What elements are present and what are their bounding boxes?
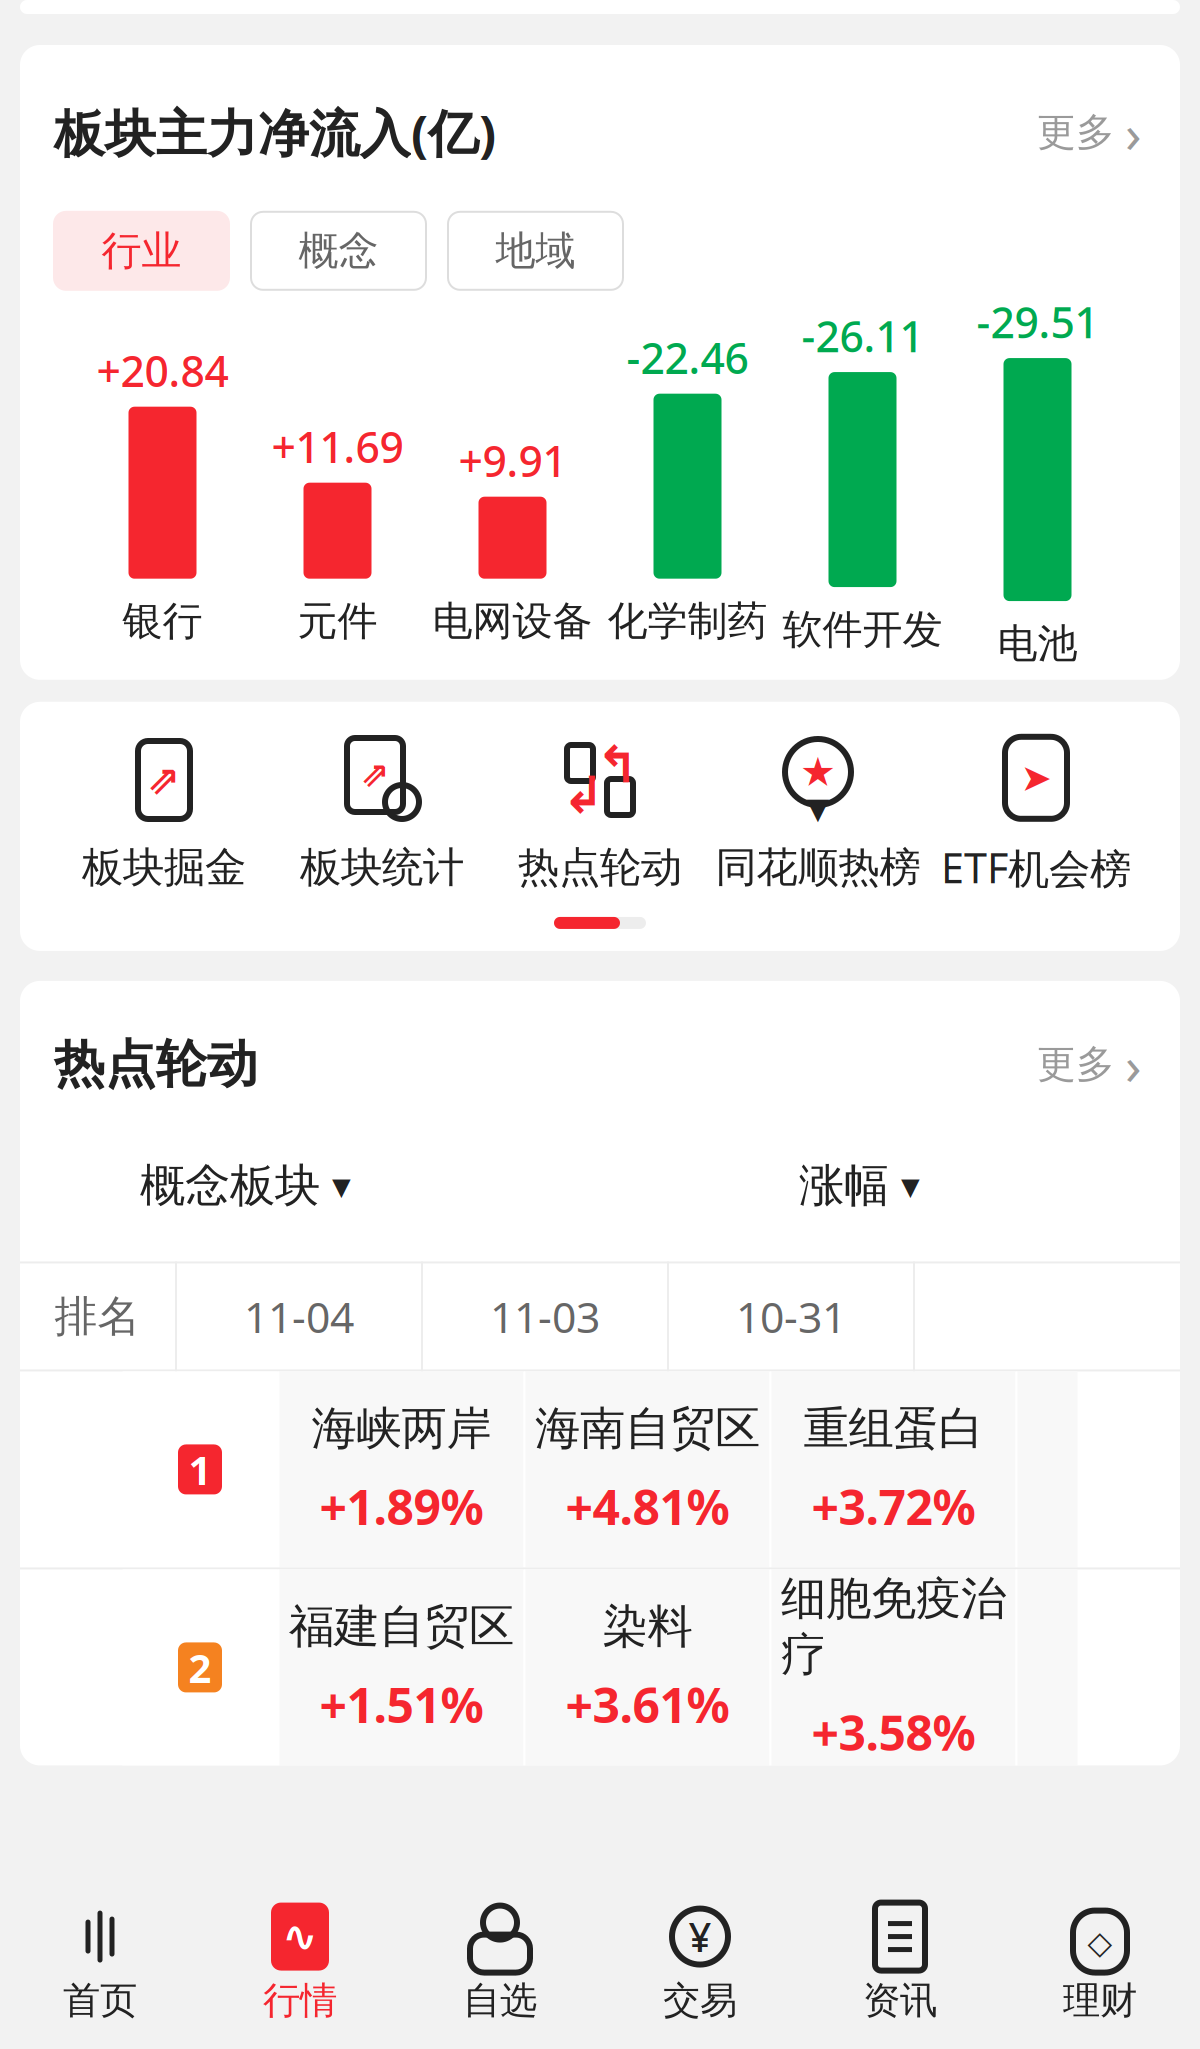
button[interactable]: ➤ [927,732,1145,895]
staticText: 理财 [1063,1978,1137,2023]
staticText: 染料 [602,1599,692,1654]
staticText: 热点轮动 [518,842,682,893]
staticText: +20.84 [96,342,228,399]
button[interactable]: 地域 [448,212,623,290]
button[interactable]: ⇗ [273,734,491,893]
staticText: ↲ [562,766,604,824]
button[interactable]: 更多 [1033,91,1146,174]
button[interactable]: 概念板块 [140,1150,351,1221]
staticText: ¥ [688,1910,711,1963]
staticText: ▾ [806,781,829,833]
button[interactable]: ◇ [1000,1906,1200,2023]
staticText: 电池 [997,619,1077,668]
staticText: 首页 [63,1978,137,2023]
staticText: 板块掘金 [82,842,246,893]
staticText: +3.61% [565,1672,729,1736]
staticText: 2 [188,1641,211,1694]
staticText: 10-31 [736,1288,846,1345]
staticText: -26.11 [801,307,923,364]
staticText: 板块统计 [300,842,464,893]
staticText: 软件开发 [782,605,942,654]
staticText: +1.51% [319,1672,483,1736]
staticText: 同花顺热榜 [715,842,920,893]
staticText: 1 [188,1443,211,1496]
staticText: › [1125,1029,1142,1100]
staticText: 11-04 [244,1288,354,1345]
staticText: +11.69 [271,418,403,475]
button[interactable]: ¥ [600,1906,800,2023]
button[interactable]: 更多 [1033,1023,1146,1106]
staticText: 福建自贸区 [289,1599,514,1654]
button[interactable]: ★ [709,734,927,893]
staticText: 资讯 [863,1978,937,2023]
staticText: 行业 [101,226,181,275]
staticText: ETF机会榜 [941,840,1131,895]
staticText: ▾ [332,1164,351,1207]
staticText: ∿ [282,1912,318,1961]
staticText: 地域 [495,226,575,275]
staticText: ↰ [596,736,638,794]
staticText: 银行 [122,597,202,646]
staticText: 更多 [1037,109,1115,156]
staticText: ◇ [1087,1924,1112,1961]
staticText: 排名 [54,1290,140,1343]
staticText: 海南自贸区 [535,1401,760,1456]
staticText: 交易 [663,1978,737,2023]
button[interactable]: 自选 [400,1906,600,2023]
staticText: ▾ [901,1164,920,1207]
staticText: 行情 [263,1978,337,2023]
staticText: 更多 [1037,1041,1115,1088]
button[interactable]: 首页 [0,1906,200,2023]
staticText: +9.91 [458,432,566,489]
staticText: 自选 [463,1978,537,2023]
staticText: › [1125,97,1142,168]
staticText: 热点轮动 [54,1033,258,1095]
staticText: ➤ [1020,757,1051,799]
staticText: 概念板块 [140,1158,320,1213]
staticText: 细胞免疫治疗 [781,1571,1006,1682]
staticText: +3.58% [811,1700,975,1764]
button[interactable]: 涨幅 [799,1150,920,1221]
button[interactable]: 概念 [251,212,426,290]
staticText: ★ [800,749,836,795]
staticText: 概念 [298,226,378,275]
button[interactable]: ⇗ [55,734,273,893]
button[interactable]: 行业 [54,212,229,290]
button[interactable]: 资讯 [800,1906,1000,2023]
staticText: 涨幅 [799,1158,889,1213]
staticText: ⇗ [360,754,389,794]
staticText: 电网设备 [432,597,592,646]
staticText: 化学制药 [607,597,767,646]
button[interactable]: ∿ [200,1906,400,2023]
staticText: ⇗ [147,757,181,803]
staticText: 11-03 [490,1288,600,1345]
staticText: -29.51 [976,293,1098,350]
staticText: 海峡两岸 [311,1401,491,1456]
staticText: 板块主力净流入(亿) [54,99,496,166]
button[interactable]: ↰ [491,734,709,893]
staticText: -22.46 [626,329,748,386]
staticText: +3.72% [811,1474,975,1538]
staticText: +1.89% [319,1474,483,1538]
staticText: 元件 [297,597,377,646]
staticText: 重组蛋白 [803,1401,983,1456]
staticText: +4.81% [565,1474,729,1538]
